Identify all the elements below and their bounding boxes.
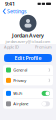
staticText: Settings [7,8,27,15]
button[interactable]: Privacy [3,75,53,85]
staticText: Privacy [13,78,26,83]
staticText: 9:41 [5,0,15,7]
staticText: Edit Profile [14,54,41,62]
button[interactable]: Settings [0,8,29,15]
staticText: Jordan Avery [12,32,44,39]
staticText: jordan.avery@icloud.com [5,39,50,44]
staticText: Wi-Fi [13,91,22,96]
button[interactable]: Wi-Fi [3,88,53,98]
staticText: Apple ID [4,44,19,50]
staticText: General [13,67,27,73]
button[interactable]: Airplane [3,99,53,109]
button[interactable]: Edit Profile [4,54,52,62]
button[interactable]: General [3,65,53,75]
staticText: Airplane [13,101,28,106]
staticText: Premium [35,44,52,50]
